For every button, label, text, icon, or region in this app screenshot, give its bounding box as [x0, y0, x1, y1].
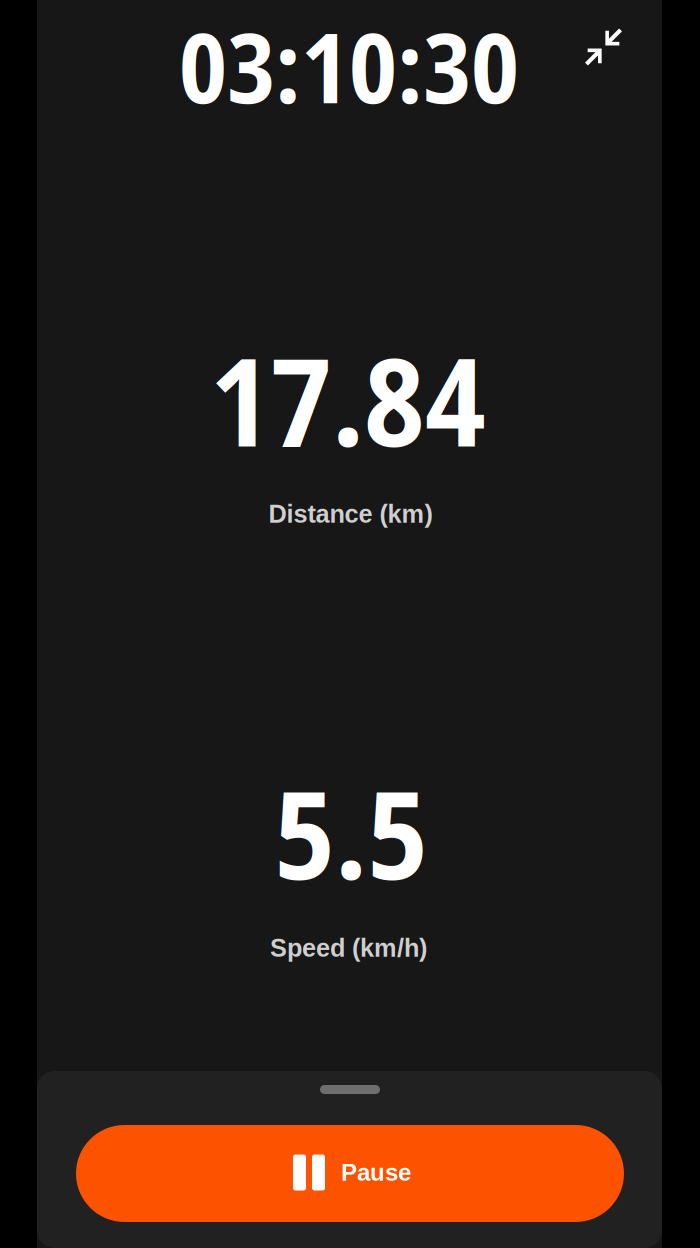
- staticText: 03:10:30: [179, 0, 519, 132]
- button[interactable]: Pause: [76, 1125, 624, 1222]
- staticText: Pause: [341, 1159, 411, 1186]
- staticText: 17.84: [210, 315, 486, 483]
- button[interactable]: Exit full screen: [575, 19, 631, 75]
- staticText: 5.5: [274, 748, 428, 916]
- staticText: Distance (km): [268, 500, 432, 528]
- staticText: Speed (km/h): [270, 934, 427, 962]
